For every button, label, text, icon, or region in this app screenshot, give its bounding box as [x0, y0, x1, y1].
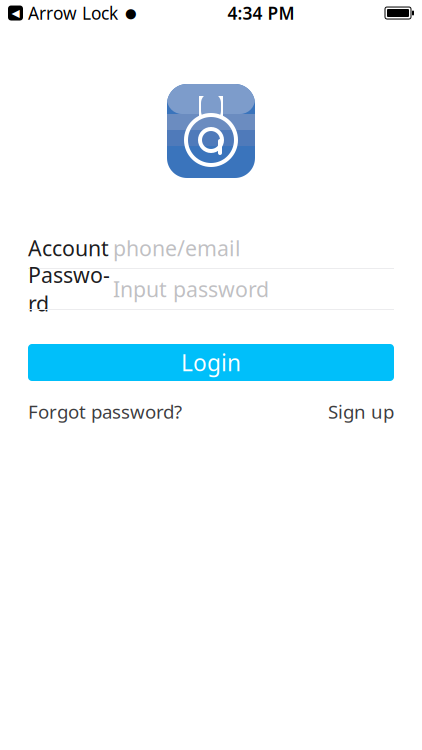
staticText: ●	[125, 5, 137, 20]
staticText: Account	[28, 234, 109, 262]
staticText: Login	[181, 347, 241, 377]
staticText: Input password	[113, 275, 269, 303]
staticText: Password	[28, 261, 110, 317]
staticText: Forgot password?	[28, 399, 182, 424]
staticText: ◀	[11, 7, 19, 19]
staticText: 4:34 PM	[227, 1, 294, 24]
button[interactable]: Sign up	[328, 395, 394, 428]
button[interactable]: Login	[28, 344, 394, 381]
staticText: Arrow Lock	[28, 1, 118, 24]
staticText: Sign up	[328, 399, 394, 424]
button[interactable]: Account	[28, 228, 394, 268]
button[interactable]: Password	[28, 269, 394, 309]
staticText: phone/email	[113, 234, 241, 262]
button[interactable]: Forgot password?	[28, 395, 182, 428]
